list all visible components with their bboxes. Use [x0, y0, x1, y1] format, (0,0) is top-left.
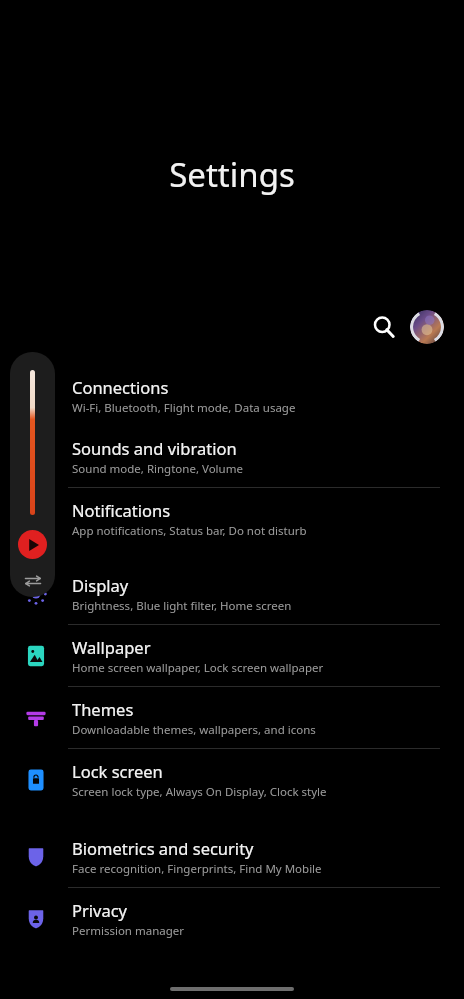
button[interactable]: Themes: [0, 687, 464, 748]
staticText: Brightness, Blue light filter, Home scre…: [72, 598, 292, 614]
button[interactable]: Search: [364, 307, 404, 347]
button[interactable]: Connections: [0, 365, 464, 426]
button[interactable]: Play: [18, 530, 47, 559]
staticText: Home screen wallpaper, Lock screen wallp…: [72, 660, 324, 676]
staticText: App notifications, Status bar, Do not di…: [72, 523, 307, 539]
staticText: Privacy: [72, 899, 128, 921]
staticText: Notifications: [72, 499, 171, 521]
other: Volume: [30, 370, 35, 515]
staticText: Screen lock type, Always On Display, Clo…: [72, 784, 327, 800]
button[interactable]: Account: [410, 310, 444, 344]
button[interactable]: Sounds and vibration: [0, 426, 464, 487]
staticText: Sounds and vibration: [72, 437, 237, 459]
staticText: Settings: [0, 152, 464, 197]
button[interactable]: Volume: [10, 352, 55, 597]
staticText: Wi-Fi, Bluetooth, Flight mode, Data usag…: [72, 400, 296, 416]
button[interactable]: Display: [0, 563, 464, 624]
button[interactable]: Biometrics and security: [0, 826, 464, 887]
button[interactable]: Privacy: [0, 888, 464, 949]
button[interactable]: Notifications: [0, 488, 464, 549]
staticText: Permission manager: [72, 923, 185, 939]
button[interactable]: Wallpaper: [0, 625, 464, 686]
staticText: Sound mode, Ringtone, Volume: [72, 461, 243, 477]
staticText: Wallpaper: [72, 636, 151, 658]
button[interactable]: Switch output: [20, 568, 46, 594]
button[interactable]: Lock screen: [0, 749, 464, 810]
staticText: Face recognition, Fingerprints, Find My …: [72, 861, 322, 877]
staticText: Connections: [72, 376, 169, 398]
staticText: Biometrics and security: [72, 837, 254, 859]
staticText: Lock screen: [72, 760, 163, 782]
staticText: Themes: [72, 698, 134, 720]
staticText: Display: [72, 574, 129, 596]
staticText: Downloadable themes, wallpapers, and ico…: [72, 722, 316, 738]
